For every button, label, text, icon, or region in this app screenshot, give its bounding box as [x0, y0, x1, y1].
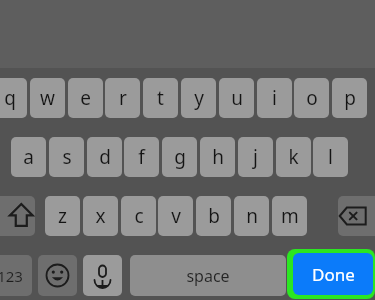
staticText: o — [306, 85, 318, 111]
staticText: h — [212, 144, 224, 170]
staticText: i — [272, 85, 277, 111]
staticText: x — [95, 203, 106, 229]
button[interactable]: z — [45, 196, 80, 236]
button[interactable]: x — [83, 196, 118, 236]
button[interactable]: s — [49, 137, 84, 177]
staticText: 123 — [0, 266, 23, 286]
button[interactable]: Dictate — [83, 255, 122, 296]
button[interactable]: j — [238, 137, 273, 177]
button[interactable]: h — [200, 137, 235, 177]
button[interactable]: o — [294, 78, 329, 118]
button[interactable]: c — [121, 196, 156, 236]
button[interactable]: f — [124, 137, 159, 177]
staticText: j — [253, 144, 258, 170]
button[interactable]: k — [276, 137, 311, 177]
staticText: k — [288, 144, 299, 170]
button[interactable]: u — [219, 78, 254, 118]
staticText: m — [281, 203, 299, 229]
staticText: space — [186, 265, 230, 287]
staticText: z — [58, 203, 67, 229]
button[interactable]: y — [181, 78, 216, 118]
button[interactable]: w — [30, 78, 65, 118]
staticText: l — [328, 144, 333, 170]
staticText: d — [99, 144, 111, 170]
staticText: c — [134, 203, 144, 229]
button[interactable]: r — [105, 78, 140, 118]
staticText: g — [174, 144, 186, 170]
button[interactable]: Shift — [0, 196, 35, 236]
button[interactable]: b — [196, 196, 231, 236]
staticText: s — [62, 144, 72, 170]
staticText: r — [119, 85, 127, 111]
staticText: n — [246, 203, 258, 229]
button[interactable]: i — [257, 78, 292, 118]
button[interactable]: p — [332, 78, 367, 118]
button[interactable]: g — [162, 137, 197, 177]
staticText: u — [231, 85, 243, 111]
staticText: e — [80, 85, 91, 111]
staticText: t — [157, 85, 164, 111]
button[interactable]: d — [87, 137, 122, 177]
button[interactable]: t — [143, 78, 178, 118]
staticText: v — [171, 203, 181, 229]
staticText: f — [138, 144, 145, 170]
button[interactable]: Done — [287, 249, 375, 299]
button[interactable]: v — [158, 196, 193, 236]
staticText: w — [40, 85, 55, 111]
button[interactable]: q — [0, 78, 27, 118]
button[interactable]: m — [272, 196, 307, 236]
staticText: a — [23, 144, 34, 170]
button[interactable]: a — [11, 137, 46, 177]
button[interactable]: space — [130, 255, 286, 296]
button[interactable]: Backspace — [338, 196, 375, 236]
staticText: y — [194, 85, 204, 111]
staticText: q — [4, 85, 16, 111]
button[interactable]: Emoji — [38, 255, 77, 296]
button[interactable]: 123 — [0, 255, 32, 296]
button[interactable]: e — [68, 78, 103, 118]
staticText: b — [208, 203, 220, 229]
button[interactable]: n — [234, 196, 269, 236]
button[interactable]: l — [313, 137, 348, 177]
staticText: p — [344, 85, 356, 111]
staticText: Done — [312, 263, 355, 286]
